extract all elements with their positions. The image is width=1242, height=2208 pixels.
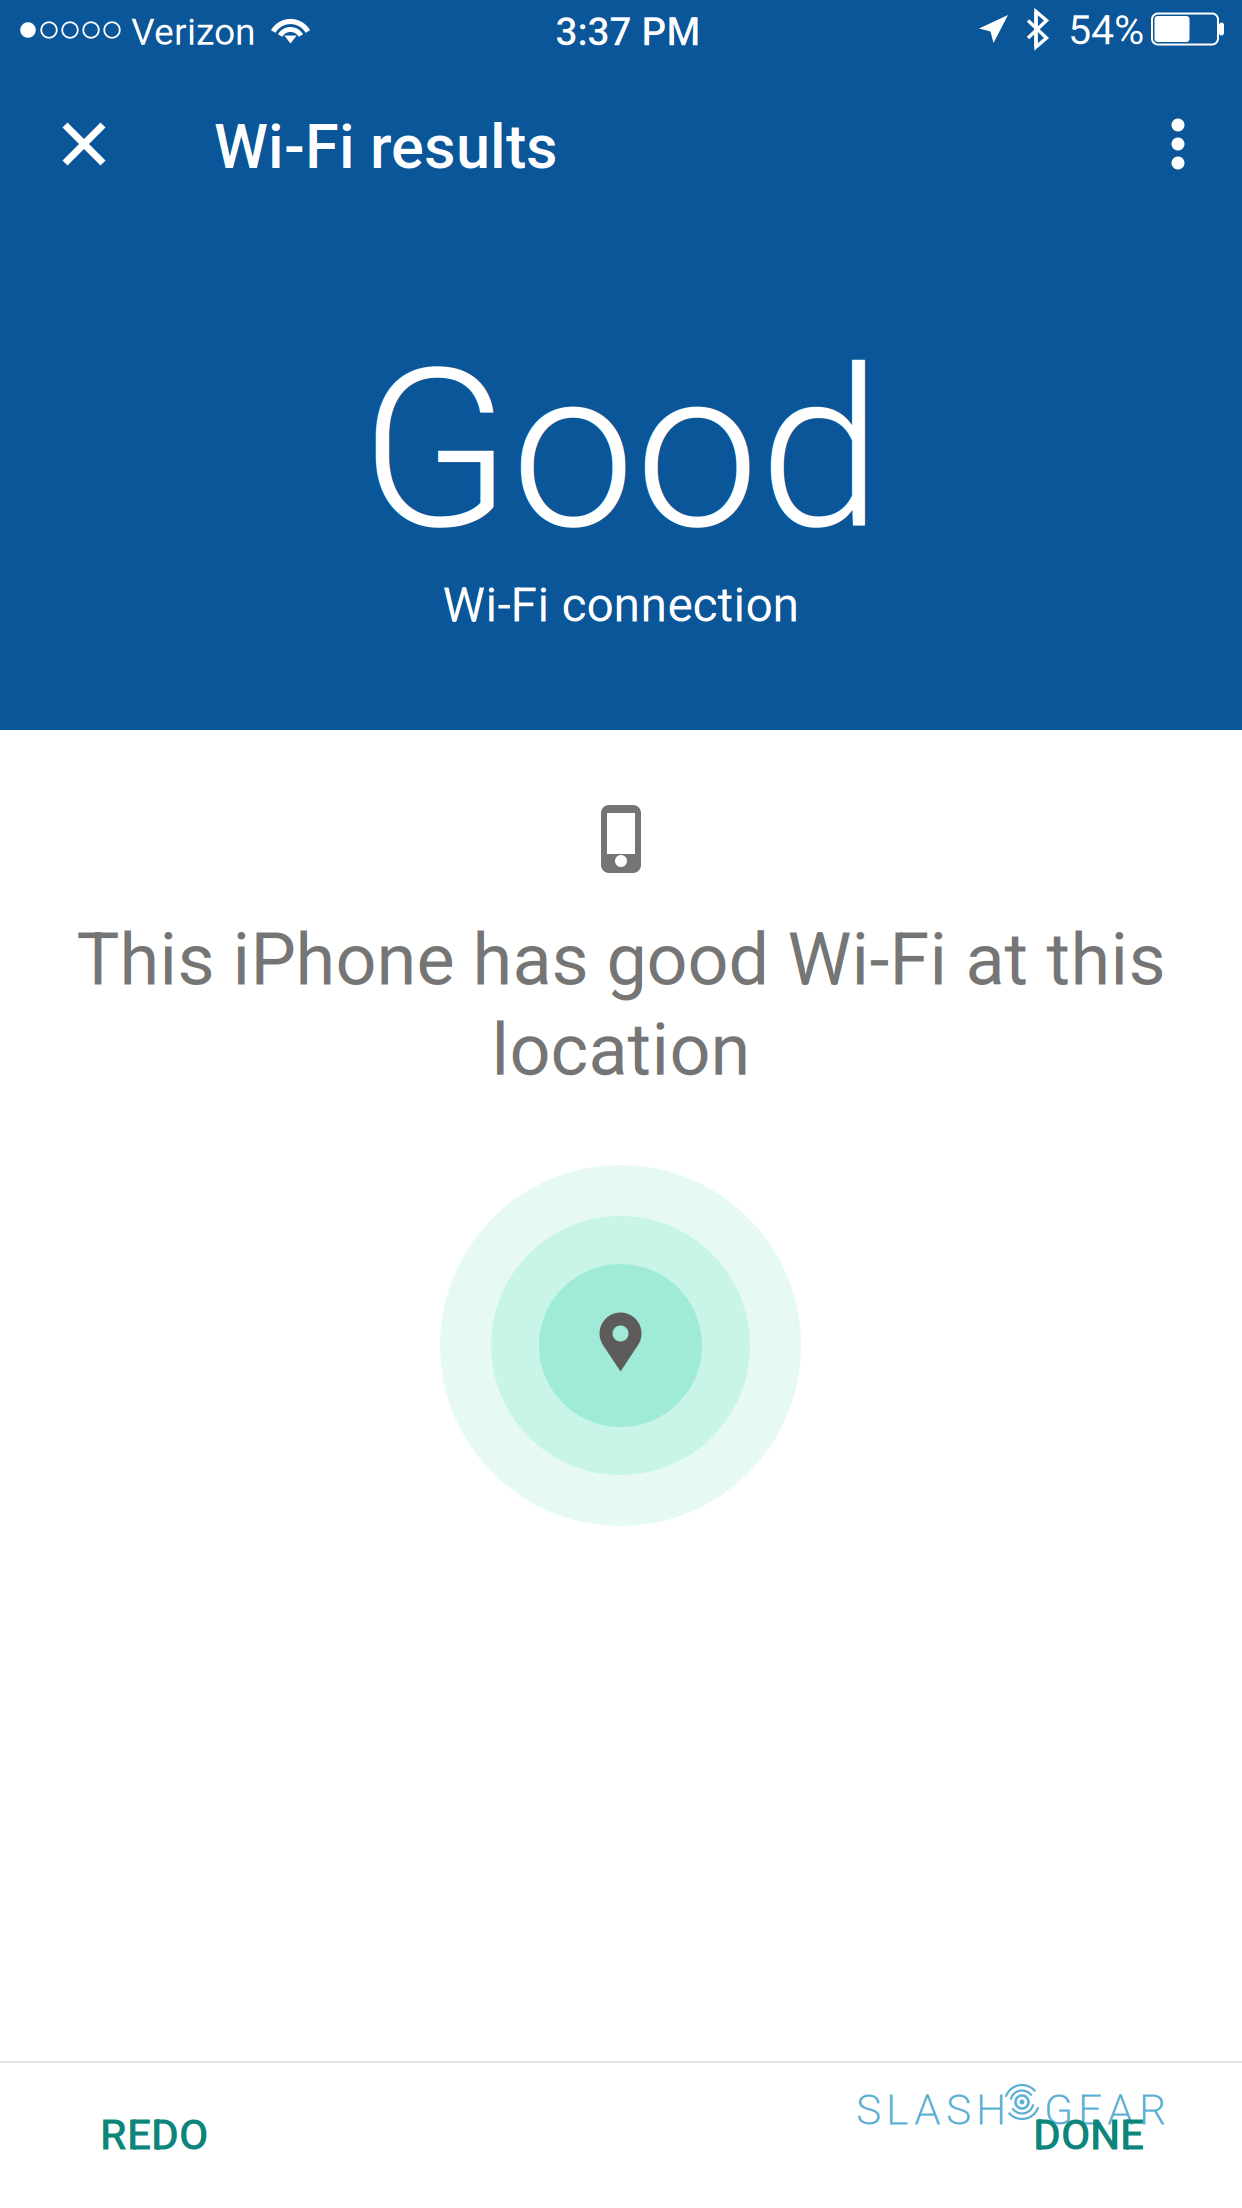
- button[interactable]: Wi-Fi results: [214, 111, 914, 183]
- staticText: GEAR: [1044, 2085, 1166, 2135]
- staticText: Wi-Fi connection: [442, 577, 799, 633]
- staticText: SLASH: [856, 2085, 1006, 2135]
- staticText: Wi-Fi results: [214, 111, 558, 183]
- button[interactable]: DONE: [966, 2090, 1226, 2180]
- staticText: REDO: [100, 2110, 208, 2160]
- staticText: Good: [360, 320, 882, 580]
- button[interactable]: More options: [1131, 97, 1225, 191]
- button[interactable]: REDO: [20, 2090, 280, 2180]
- staticText: Verizon: [131, 10, 256, 54]
- staticText: 54%: [1068, 6, 1144, 54]
- staticText: This iPhone has good Wi-Fi at this: [76, 918, 1165, 1002]
- staticText: DONE: [1033, 2110, 1144, 2160]
- staticText: location: [491, 1008, 750, 1092]
- staticText: 3:37 PM: [555, 9, 700, 55]
- button[interactable]: Close: [37, 97, 131, 191]
